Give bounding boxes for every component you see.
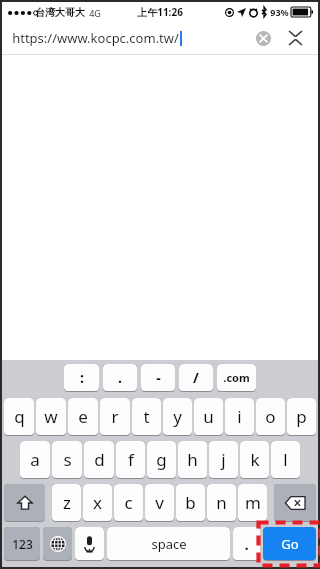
staticText: q xyxy=(14,405,25,428)
staticText: https://www.kocpc.com.tw/ xyxy=(12,29,179,47)
button[interactable]: - xyxy=(141,364,175,391)
button[interactable]: r xyxy=(100,398,130,435)
button[interactable]: y xyxy=(163,398,192,435)
button[interactable]: q xyxy=(4,398,34,435)
staticText: space xyxy=(151,535,187,553)
staticText: f xyxy=(128,448,134,471)
button[interactable]: j xyxy=(209,441,238,478)
staticText: 4G xyxy=(89,7,101,19)
button[interactable]: u xyxy=(194,398,223,435)
staticText: x xyxy=(93,491,102,514)
staticText: . xyxy=(118,368,122,387)
button[interactable]: s xyxy=(52,441,82,478)
staticText: v xyxy=(155,491,164,514)
button[interactable]: Backspace xyxy=(274,484,316,521)
staticText: a xyxy=(30,448,40,471)
staticText: e xyxy=(78,405,88,428)
button[interactable]: space xyxy=(107,527,230,560)
button[interactable]: b xyxy=(176,484,205,521)
other: Change keyboard xyxy=(50,536,66,552)
button[interactable]: Collapse xyxy=(282,25,308,51)
staticText: 93% xyxy=(270,6,289,18)
button[interactable]: . xyxy=(233,527,260,560)
staticText: l xyxy=(283,448,288,471)
staticText: . xyxy=(244,534,249,554)
button[interactable]: a xyxy=(20,441,50,478)
button[interactable]: . xyxy=(103,364,137,391)
staticText: b xyxy=(185,491,196,514)
staticText: .com xyxy=(223,370,250,385)
button[interactable]: v xyxy=(145,484,174,521)
button[interactable]: Shift xyxy=(4,484,45,521)
button[interactable]: .com xyxy=(217,364,256,391)
staticText: z xyxy=(63,491,71,514)
staticText: m xyxy=(245,491,261,514)
staticText: r xyxy=(111,405,119,428)
button[interactable]: z xyxy=(52,484,81,521)
button[interactable]: i xyxy=(225,398,254,435)
button[interactable]: g xyxy=(147,441,176,478)
staticText: y xyxy=(173,405,182,428)
button[interactable]: : xyxy=(64,364,99,391)
button[interactable]: e xyxy=(68,398,98,435)
button[interactable]: Go xyxy=(263,527,316,560)
staticText: t xyxy=(143,405,150,428)
staticText: d xyxy=(94,448,105,471)
staticText: j xyxy=(221,448,226,471)
staticText: : xyxy=(80,368,84,387)
button[interactable]: x xyxy=(83,484,112,521)
staticText: 上午11:26 xyxy=(137,5,183,19)
button[interactable]: f xyxy=(116,441,145,478)
button[interactable]: l xyxy=(271,441,300,478)
staticText: 台湾大哥大 xyxy=(35,6,85,19)
button[interactable]: p xyxy=(287,398,316,435)
button[interactable]: Change keyboard xyxy=(43,527,72,560)
button[interactable]: n xyxy=(207,484,236,521)
staticText: h xyxy=(187,448,198,471)
staticText: c xyxy=(124,491,133,514)
button[interactable]: m xyxy=(238,484,267,521)
staticText: n xyxy=(216,491,227,514)
button[interactable]: h xyxy=(178,441,207,478)
staticText: / xyxy=(193,368,199,387)
staticText: 123 xyxy=(12,536,33,552)
other: Backspace xyxy=(285,496,305,510)
other: Voice input xyxy=(84,536,95,552)
staticText: Go xyxy=(281,535,299,553)
button[interactable]: Voice input xyxy=(75,527,104,560)
staticText: p xyxy=(296,405,307,428)
staticText: o xyxy=(265,405,276,428)
staticText: i xyxy=(237,405,242,428)
button[interactable]: o xyxy=(256,398,285,435)
staticText: k xyxy=(250,448,260,471)
button[interactable]: w xyxy=(36,398,66,435)
button[interactable]: / xyxy=(179,364,213,391)
button[interactable]: Clear text xyxy=(252,27,274,49)
button[interactable]: k xyxy=(240,441,269,478)
other: Shift xyxy=(17,495,33,511)
button[interactable]: t xyxy=(132,398,161,435)
button[interactable]: 123 xyxy=(4,527,40,560)
staticText: s xyxy=(63,448,72,471)
staticText: - xyxy=(156,368,161,387)
staticText: g xyxy=(156,448,167,471)
button[interactable]: d xyxy=(84,441,114,478)
staticText: u xyxy=(203,405,214,428)
button[interactable]: c xyxy=(114,484,143,521)
staticText: w xyxy=(44,405,58,428)
